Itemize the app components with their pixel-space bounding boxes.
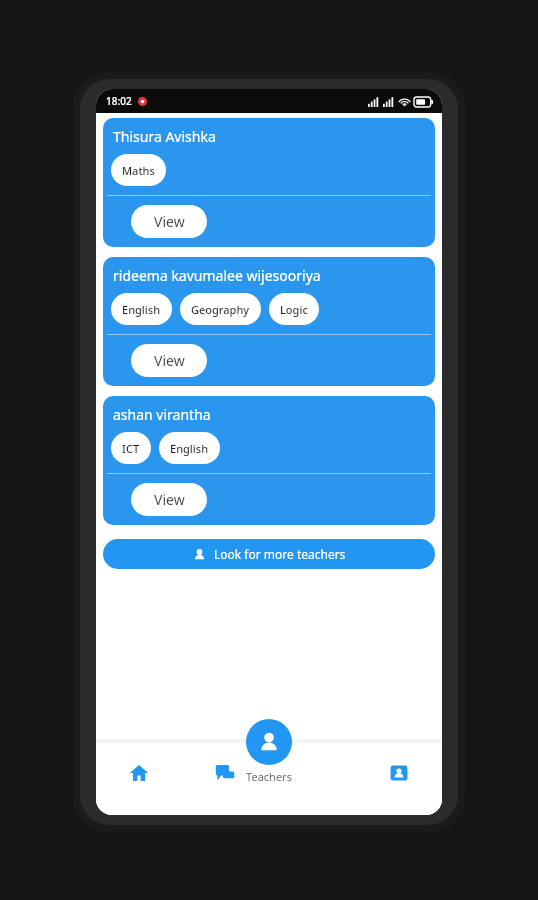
- button[interactable]: Look for more teachers: [103, 539, 435, 569]
- button[interactable]: View: [131, 344, 207, 377]
- button[interactable]: English: [111, 293, 172, 325]
- button[interactable]: ICT: [111, 432, 151, 464]
- staticText: ICT: [122, 441, 140, 456]
- button[interactable]: English: [159, 432, 220, 464]
- staticText: English: [122, 302, 161, 317]
- staticText: View: [154, 490, 185, 509]
- staticText: Look for more teachers: [214, 546, 346, 562]
- button[interactable]: ashan virantha: [103, 396, 435, 525]
- button[interactable]: View: [131, 483, 207, 516]
- button[interactable]: View: [131, 205, 207, 238]
- staticText: English: [170, 441, 209, 456]
- staticText: View: [154, 351, 185, 370]
- staticText: Logic: [280, 302, 308, 317]
- button[interactable]: Thisura Avishka: [103, 118, 435, 247]
- button[interactable]: rideema kavumalee wijesooriya: [103, 257, 435, 386]
- button[interactable]: Teachers: [246, 719, 292, 765]
- button[interactable]: Geography: [180, 293, 261, 325]
- staticText: rideema kavumalee wijesooriya: [113, 266, 321, 285]
- button[interactable]: Profile: [355, 751, 442, 797]
- staticText: 18:02: [106, 94, 132, 108]
- staticText: Geography: [191, 302, 250, 317]
- button[interactable]: Messages: [182, 751, 268, 797]
- staticText: Maths: [122, 163, 155, 178]
- staticText: Thisura Avishka: [113, 127, 216, 146]
- button[interactable]: Logic: [269, 293, 319, 325]
- staticText: View: [154, 212, 185, 231]
- button[interactable]: Home: [96, 751, 182, 797]
- staticText: Teachers: [246, 769, 292, 784]
- staticText: ashan virantha: [113, 405, 211, 424]
- button[interactable]: Maths: [111, 154, 166, 186]
